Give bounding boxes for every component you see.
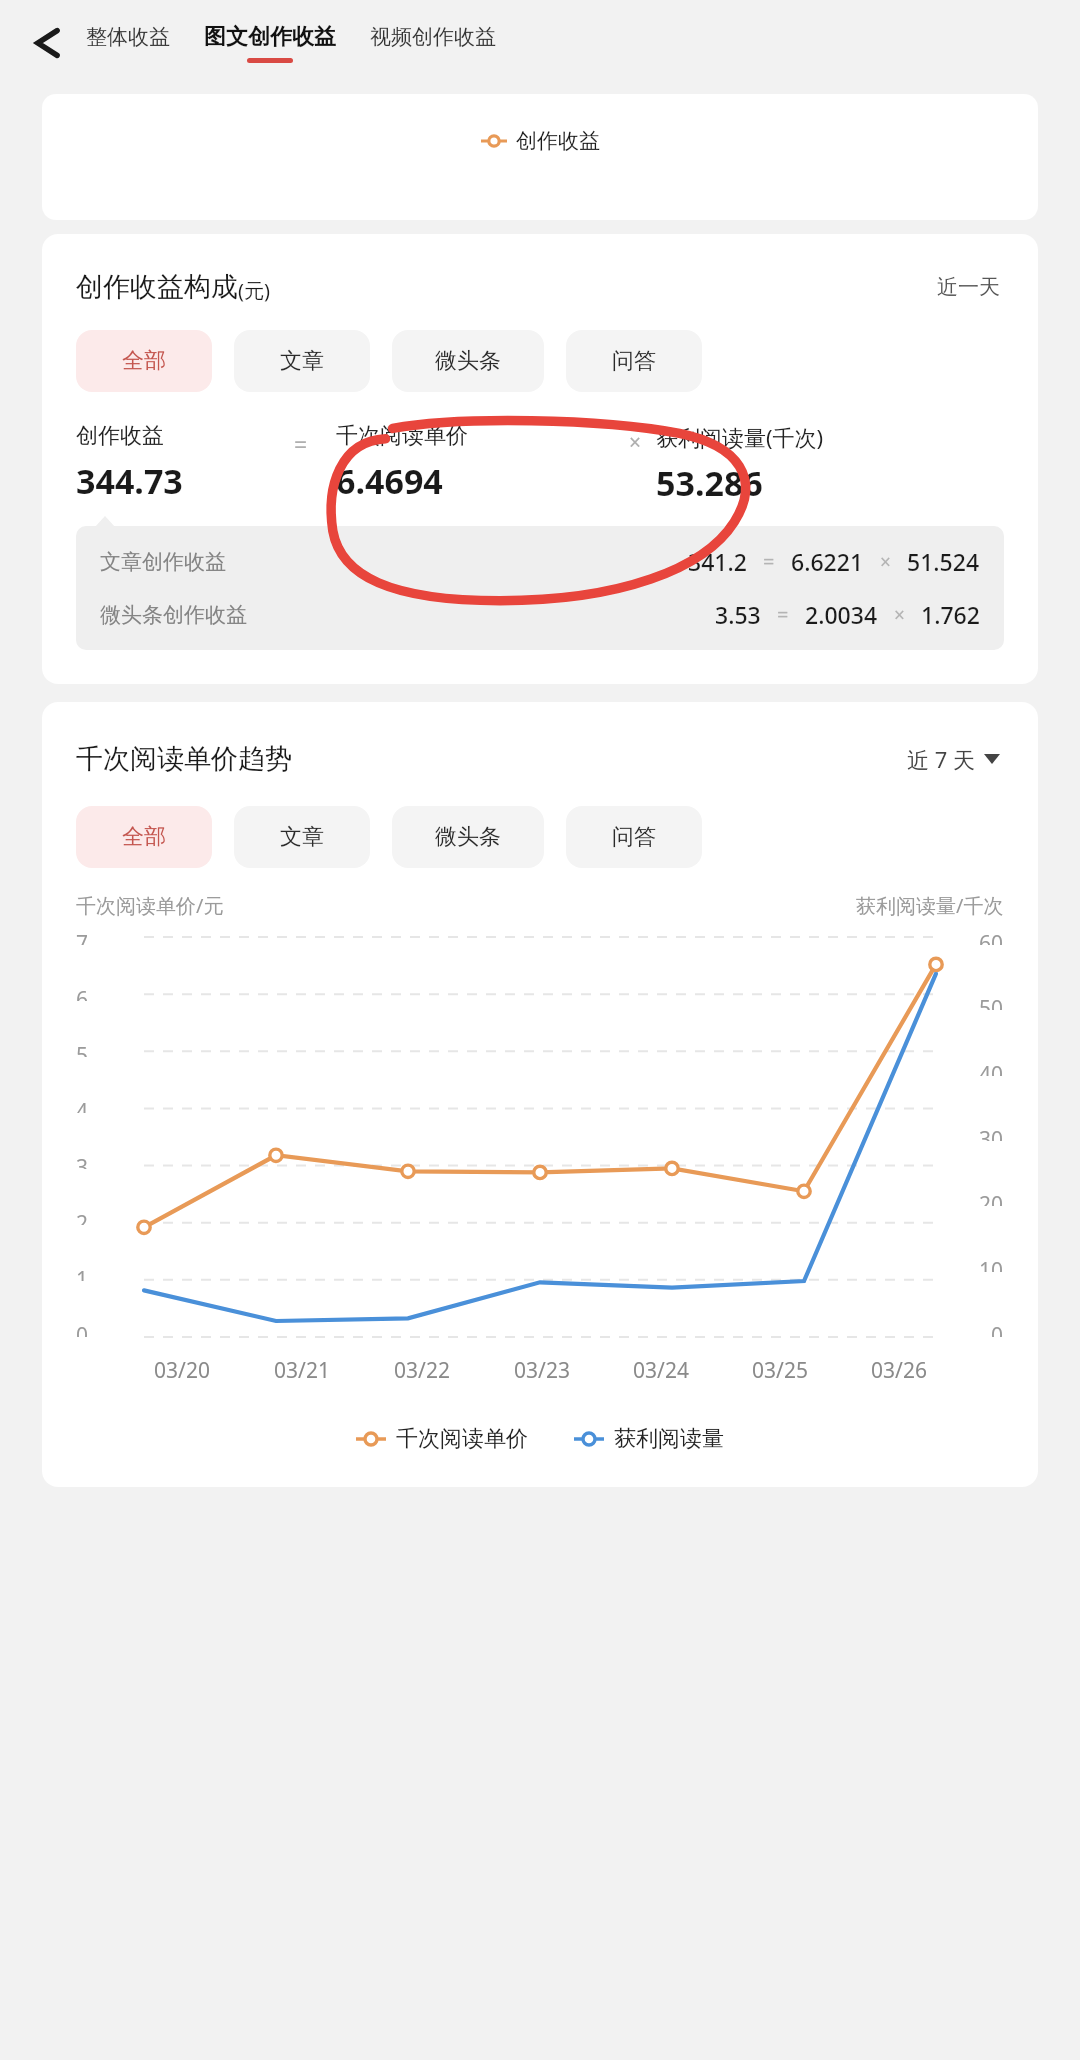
button[interactable]: 全部: [76, 806, 212, 868]
staticText: 0: [991, 1321, 1004, 1337]
button[interactable]: 文章: [234, 330, 370, 392]
staticText: 近一天: [937, 274, 1000, 300]
staticText: 53.286: [656, 460, 763, 506]
staticText: 千次阅读单价趋势: [76, 742, 292, 776]
staticText: 创作收益: [516, 128, 600, 154]
staticText: 千次阅读单价: [396, 1425, 528, 1453]
staticText: 整体收益: [86, 24, 170, 50]
staticText: 6.6221: [791, 546, 864, 577]
staticText: 2: [76, 1209, 89, 1225]
staticText: 6.4694: [336, 458, 443, 504]
staticText: 获利阅读量(千次): [656, 422, 824, 452]
button[interactable]: 问答: [566, 330, 702, 392]
staticText: 1: [76, 1265, 89, 1281]
staticText: 50: [979, 994, 1004, 1010]
staticText: 视频创作收益: [370, 24, 496, 50]
staticText: 4: [76, 1097, 89, 1113]
staticText: 问答: [612, 347, 656, 375]
staticText: 问答: [612, 823, 656, 851]
staticText: 微头条创作收益: [100, 602, 247, 628]
staticText: 344.73: [76, 458, 183, 504]
staticText: ×: [880, 549, 891, 575]
staticText: =: [777, 601, 789, 628]
button[interactable]: 整体收益: [84, 20, 172, 66]
staticText: 40: [979, 1060, 1004, 1076]
button[interactable]: 问答: [566, 806, 702, 868]
staticText: 获利阅读量: [614, 1425, 724, 1453]
staticText: 创作收益: [76, 422, 164, 450]
staticText: 03/24: [633, 1356, 689, 1385]
staticText: ×: [894, 602, 905, 628]
staticText: =: [294, 428, 308, 459]
staticText: 文章: [280, 347, 324, 375]
staticText: 微头条: [435, 347, 501, 375]
staticText: 创作收益构成: [76, 270, 238, 304]
staticText: 1.762: [921, 599, 980, 630]
staticText: ×: [629, 428, 642, 457]
staticText: 文章创作收益: [100, 549, 226, 575]
button[interactable]: 近 7 天: [903, 740, 1004, 778]
staticText: 03/21: [274, 1356, 330, 1385]
staticText: 2.0034: [805, 599, 878, 630]
staticText: 30: [979, 1125, 1004, 1141]
staticText: 全部: [122, 823, 166, 851]
button[interactable]: 全部: [76, 330, 212, 392]
staticText: 03/20: [154, 1356, 210, 1385]
button[interactable]: 微头条: [392, 806, 544, 868]
staticText: 千次阅读单价: [336, 422, 468, 450]
staticText: 5: [76, 1041, 89, 1057]
staticText: 341.2: [688, 546, 747, 577]
staticText: 03/23: [514, 1356, 570, 1385]
staticText: 6: [76, 985, 89, 1001]
button[interactable]: 获利阅读量: [574, 1425, 724, 1453]
button[interactable]: 近一天: [933, 270, 1004, 304]
staticText: 51.524: [907, 546, 980, 577]
button[interactable]: 视频创作收益: [368, 20, 498, 66]
staticText: 10: [979, 1256, 1004, 1272]
staticText: 3: [76, 1153, 89, 1169]
staticText: 03/22: [394, 1356, 450, 1385]
staticText: =: [763, 548, 775, 575]
staticText: 0: [76, 1321, 89, 1337]
staticText: 微头条: [435, 823, 501, 851]
staticText: 60: [979, 929, 1004, 945]
staticText: 文章: [280, 823, 324, 851]
staticText: 全部: [122, 347, 166, 375]
staticText: 20: [979, 1190, 1004, 1206]
staticText: 7: [76, 929, 89, 945]
staticText: 03/26: [871, 1356, 927, 1385]
button[interactable]: 文章: [234, 806, 370, 868]
button[interactable]: 图文创作收益: [202, 19, 338, 67]
staticText: 图文创作收益: [204, 23, 336, 51]
button[interactable]: Back: [10, 12, 72, 74]
staticText: 近 7 天: [907, 744, 976, 774]
button[interactable]: 千次阅读单价: [356, 1425, 528, 1453]
staticText: (元): [238, 277, 270, 304]
staticText: 03/25: [752, 1356, 808, 1385]
staticText: 千次阅读单价/元: [76, 892, 224, 919]
staticText: 获利阅读量/千次: [856, 892, 1004, 919]
button[interactable]: 微头条: [392, 330, 544, 392]
staticText: 3.53: [715, 599, 761, 630]
